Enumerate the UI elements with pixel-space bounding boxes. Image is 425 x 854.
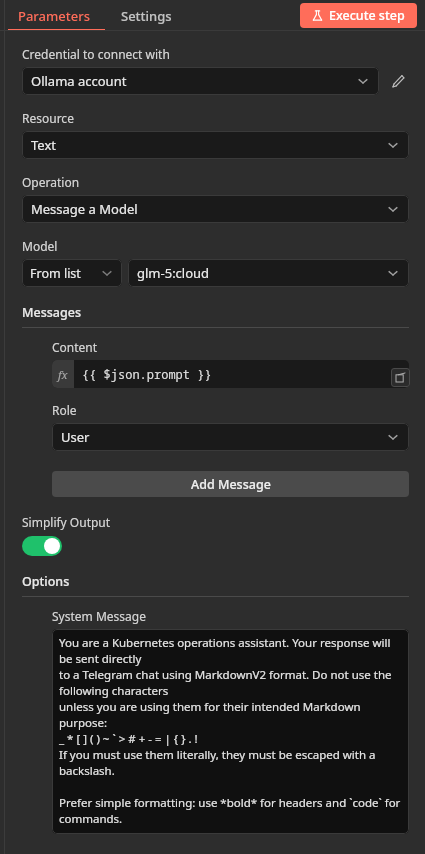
button[interactable]: Simplify Output toggle <box>22 536 62 556</box>
button[interactable]: From list <box>22 259 122 287</box>
staticText: Ollama account <box>31 72 356 90</box>
staticText: Options <box>22 573 70 590</box>
button[interactable]: glm-5:cloud <box>128 259 409 287</box>
button[interactable]: Edit credential <box>387 70 409 92</box>
button[interactable]: Reset value <box>391 368 410 387</box>
button[interactable]: Message a Model <box>22 195 409 223</box>
staticText: Content <box>52 339 98 355</box>
button[interactable]: Parameters <box>8 0 101 31</box>
staticText: System Message <box>52 608 146 624</box>
staticText: Settings <box>121 7 172 25</box>
staticText: From list <box>30 265 100 282</box>
staticText: Add Message <box>191 476 271 493</box>
staticText: Operation <box>22 174 80 190</box>
button[interactable]: Settings <box>111 0 182 31</box>
staticText: fx <box>58 367 68 382</box>
staticText: glm-5:cloud <box>137 264 386 282</box>
staticText: Execute step <box>329 7 405 24</box>
staticText: {{ $json.prompt }} <box>82 366 212 382</box>
staticText: User <box>61 428 386 446</box>
staticText: Text <box>31 136 386 154</box>
staticText: Role <box>52 402 77 418</box>
button[interactable]: Ollama account <box>22 67 379 95</box>
button[interactable]: You are a Kubernetes operations assistan… <box>52 629 409 834</box>
staticText: Simplify Output <box>22 514 111 530</box>
staticText: Resource <box>22 110 74 126</box>
staticText: You are a Kubernetes operations assistan… <box>59 635 402 827</box>
button[interactable]: Add Message <box>52 471 409 497</box>
button[interactable]: Execute step <box>300 3 417 28</box>
button[interactable]: fx <box>52 360 409 388</box>
button[interactable]: User <box>52 423 409 451</box>
button[interactable]: Text <box>22 131 409 159</box>
staticText: Messages <box>22 304 81 321</box>
staticText: Message a Model <box>31 200 386 218</box>
staticText: Parameters <box>18 7 91 25</box>
staticText: Model <box>22 238 58 254</box>
staticText: Credential to connect with <box>22 46 170 62</box>
